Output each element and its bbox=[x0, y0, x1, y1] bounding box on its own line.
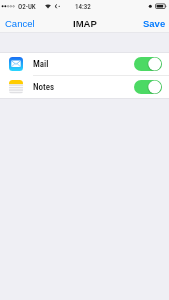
staticText: IMAP bbox=[73, 18, 97, 29]
staticText: Cancel bbox=[5, 18, 35, 29]
staticText: Mail bbox=[33, 59, 49, 70]
staticText: O2-UK bbox=[18, 3, 36, 11]
staticText: Notes bbox=[33, 82, 55, 93]
staticText: 14:32 bbox=[75, 3, 91, 11]
button[interactable]: Notes bbox=[0, 76, 169, 98]
button[interactable]: Toggle bbox=[134, 80, 162, 94]
staticText: Save bbox=[143, 18, 166, 29]
button[interactable]: Cancel bbox=[0, 13, 41, 33]
button[interactable]: Save bbox=[137, 13, 169, 33]
button[interactable]: Mail bbox=[0, 53, 169, 75]
button[interactable]: Toggle bbox=[134, 57, 162, 71]
